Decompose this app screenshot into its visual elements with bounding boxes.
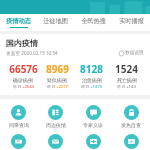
button[interactable]: 周边疫情 (37, 105, 74, 128)
staticText: +2277 (56, 84, 68, 90)
staticText: 专家义诊 (83, 122, 103, 128)
staticText: 1524 (115, 62, 138, 76)
staticText: 实时播报 (119, 17, 144, 25)
staticText: 确诊病例 (13, 77, 33, 83)
staticText: +1373 (90, 84, 102, 90)
button[interactable]: 物资需求 (37, 134, 74, 150)
staticText: 国内疫情 (6, 38, 38, 48)
staticText: 治愈病例 (82, 77, 102, 83)
staticText: 8969 (46, 62, 69, 76)
staticText: 昨日 (117, 84, 126, 89)
button[interactable]: 疫情动态 (0, 14, 37, 31)
staticText: 数据说明 (125, 50, 144, 56)
staticText: 疫情动态 (6, 17, 31, 25)
staticText: 全民热搜 (81, 17, 106, 25)
staticText: 疑似病例 (47, 77, 67, 83)
staticText: 周边疫情 (46, 122, 66, 128)
staticText: 昨日 (47, 84, 56, 89)
button[interactable]: 1524 (109, 62, 144, 90)
button[interactable]: 8128 (74, 62, 109, 90)
staticText: 66576 (9, 62, 38, 76)
staticText: +2644 (22, 84, 34, 90)
button[interactable]: 全民热搜 (74, 14, 112, 31)
staticText: +143 (126, 84, 136, 90)
staticText: 昨日 (81, 84, 90, 89)
staticText: 迁徙地图 (43, 17, 68, 25)
button[interactable]: 防护视频 (112, 134, 150, 150)
button[interactable]: 发热自查 (112, 105, 150, 128)
staticText: 昨日 (13, 84, 22, 89)
staticText: 8128 (80, 62, 103, 76)
button[interactable]: 66576 (6, 62, 40, 90)
button[interactable]: 实时播报 (112, 14, 150, 31)
button[interactable]: 专家义诊 (74, 105, 112, 128)
staticText: 发热自查 (121, 122, 141, 128)
button[interactable]: 迁徙地图 (37, 14, 74, 31)
staticText: 同乘查询 (9, 122, 29, 128)
button[interactable]: 谣言粉碎 (0, 134, 37, 150)
button[interactable]: 8969 (40, 62, 74, 90)
button[interactable]: 同乘查询 (0, 105, 37, 128)
staticText: 死亡病例 (117, 77, 137, 83)
staticText: 更新至 2020.02.15 10:54 (6, 50, 58, 56)
button[interactable]: 数据说明 (119, 50, 144, 56)
button[interactable]: 在线问诊 (74, 134, 112, 150)
